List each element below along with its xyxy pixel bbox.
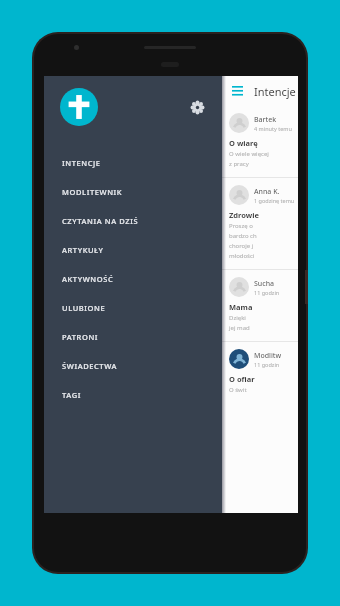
button[interactable]: AKTYWNOŚĆ — [44, 264, 222, 293]
staticText: Sucha — [254, 279, 275, 289]
staticText: Proszę o — [229, 222, 253, 230]
staticText: bardzo ch — [229, 232, 257, 240]
button[interactable]: INTENCJE — [44, 148, 222, 177]
staticText: 11 godzin — [254, 361, 280, 368]
staticText: PATRONI — [62, 332, 99, 342]
staticText: choroje j — [229, 242, 254, 250]
button[interactable]: App logo — [60, 88, 98, 126]
staticText: AKTYWNOŚĆ — [62, 274, 114, 284]
staticText: jej mad — [229, 324, 250, 332]
staticText: ULUBIONE — [62, 303, 106, 313]
button[interactable]: Open navigation drawer — [230, 84, 244, 98]
button[interactable]: Settings — [184, 94, 210, 120]
staticText: 1 godzinę temu — [254, 197, 295, 204]
staticText: 4 minuty temu — [254, 125, 292, 132]
staticText: O wiele więcej — [229, 150, 269, 158]
button[interactable]: Modlitw — [222, 342, 298, 403]
staticText: O wiarę — [229, 138, 258, 148]
button[interactable]: CZYTANIA NA DZIŚ — [44, 206, 222, 235]
button[interactable]: Bartek — [222, 106, 298, 177]
button[interactable]: MODLITEWNIK — [44, 177, 222, 206]
staticText: 11 godzin — [254, 289, 280, 296]
staticText: Intencje — [254, 84, 296, 99]
staticText: MODLITEWNIK — [62, 187, 123, 197]
staticText: O ofiar — [229, 374, 255, 384]
staticText: Anna K. — [254, 187, 280, 197]
staticText: ŚWIADECTWA — [62, 361, 118, 371]
staticText: O świt — [229, 386, 247, 394]
staticText: z pracy — [229, 160, 249, 168]
button[interactable]: ŚWIADECTWA — [44, 351, 222, 380]
staticText: młodości — [229, 252, 255, 260]
button[interactable]: TAGI — [44, 380, 222, 409]
staticText: ARTYKUŁY — [62, 245, 104, 255]
staticText: CZYTANIA NA DZIŚ — [62, 216, 139, 226]
button[interactable]: Sucha — [222, 270, 298, 341]
staticText: INTENCJE — [62, 158, 101, 168]
staticText: TAGI — [62, 390, 81, 400]
staticText: Dzięki — [229, 314, 246, 322]
staticText: Zdrowie — [229, 210, 259, 220]
button[interactable]: ARTYKUŁY — [44, 235, 222, 264]
staticText: Modlitw — [254, 351, 282, 361]
staticText: Bartek — [254, 115, 277, 125]
button[interactable]: ULUBIONE — [44, 293, 222, 322]
button[interactable]: PATRONI — [44, 322, 222, 351]
staticText: Mama — [229, 302, 253, 312]
button[interactable]: Anna K. — [222, 178, 298, 269]
